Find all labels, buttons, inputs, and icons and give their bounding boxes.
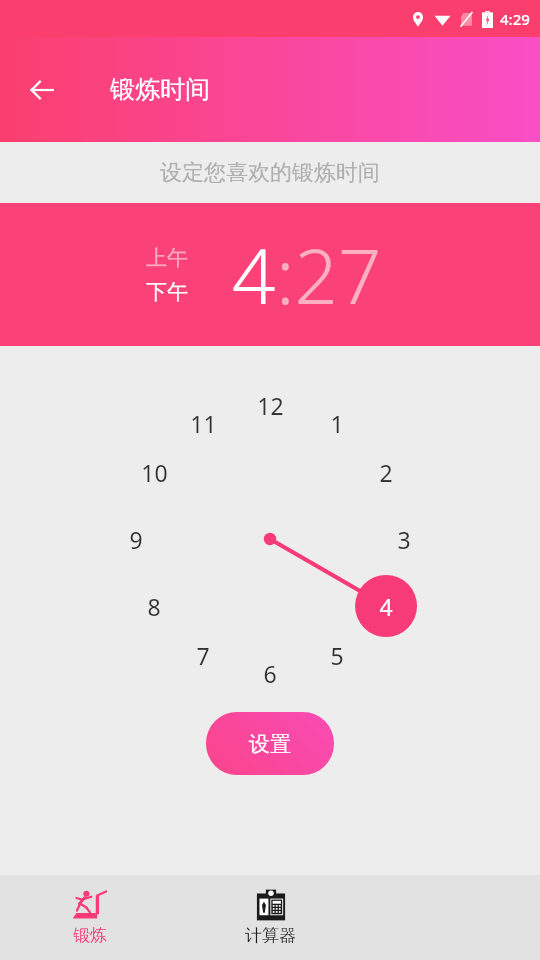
button[interactable]: 4 xyxy=(364,584,408,628)
staticText: 设定您喜欢的锻炼时间 xyxy=(160,159,380,187)
staticText: 计算器 xyxy=(245,925,296,946)
staticText: 12 xyxy=(257,390,284,421)
staticText: 9 xyxy=(129,524,143,555)
button[interactable]: Back xyxy=(18,66,66,114)
staticText: 4 xyxy=(379,591,393,622)
button[interactable]: 下午 xyxy=(142,277,192,307)
button[interactable]: 3 xyxy=(382,517,426,561)
staticText: 2 xyxy=(379,457,393,488)
staticText: 锻炼时间 xyxy=(110,74,210,105)
button[interactable]: 6 xyxy=(248,651,292,695)
staticText: 8 xyxy=(147,591,161,622)
button[interactable]: :27 xyxy=(276,223,382,327)
staticText: 5 xyxy=(330,640,344,671)
button[interactable]: 11 xyxy=(181,401,225,445)
button[interactable]: 8 xyxy=(132,584,176,628)
button[interactable]: 9 xyxy=(114,517,158,561)
staticText: 1 xyxy=(330,408,344,439)
staticText: 3 xyxy=(397,524,411,555)
staticText: 7 xyxy=(196,640,210,671)
staticText: 10 xyxy=(141,457,168,488)
staticText: 4:29 xyxy=(500,9,530,29)
button[interactable]: 设置 xyxy=(206,712,334,775)
button[interactable]: 10 xyxy=(132,450,176,494)
staticText: 锻炼 xyxy=(73,925,107,946)
button[interactable]: 锻炼 xyxy=(0,875,180,960)
button[interactable]: 5 xyxy=(315,633,359,677)
staticText: 下午 xyxy=(146,279,188,305)
button[interactable]: 2 xyxy=(364,450,408,494)
staticText: :27 xyxy=(276,223,382,327)
button[interactable]: 计算器 xyxy=(180,875,360,960)
staticText: 4 xyxy=(232,223,276,327)
button[interactable]: 1 xyxy=(315,401,359,445)
button[interactable]: 上午 xyxy=(142,243,192,273)
button[interactable]: 4 xyxy=(232,223,276,327)
staticText: 6 xyxy=(263,658,277,689)
staticText: 上午 xyxy=(146,245,188,271)
button[interactable]: 7 xyxy=(181,633,225,677)
button[interactable]: 12 xyxy=(248,383,292,427)
staticText: 设置 xyxy=(249,731,291,757)
staticText: 11 xyxy=(190,408,217,439)
